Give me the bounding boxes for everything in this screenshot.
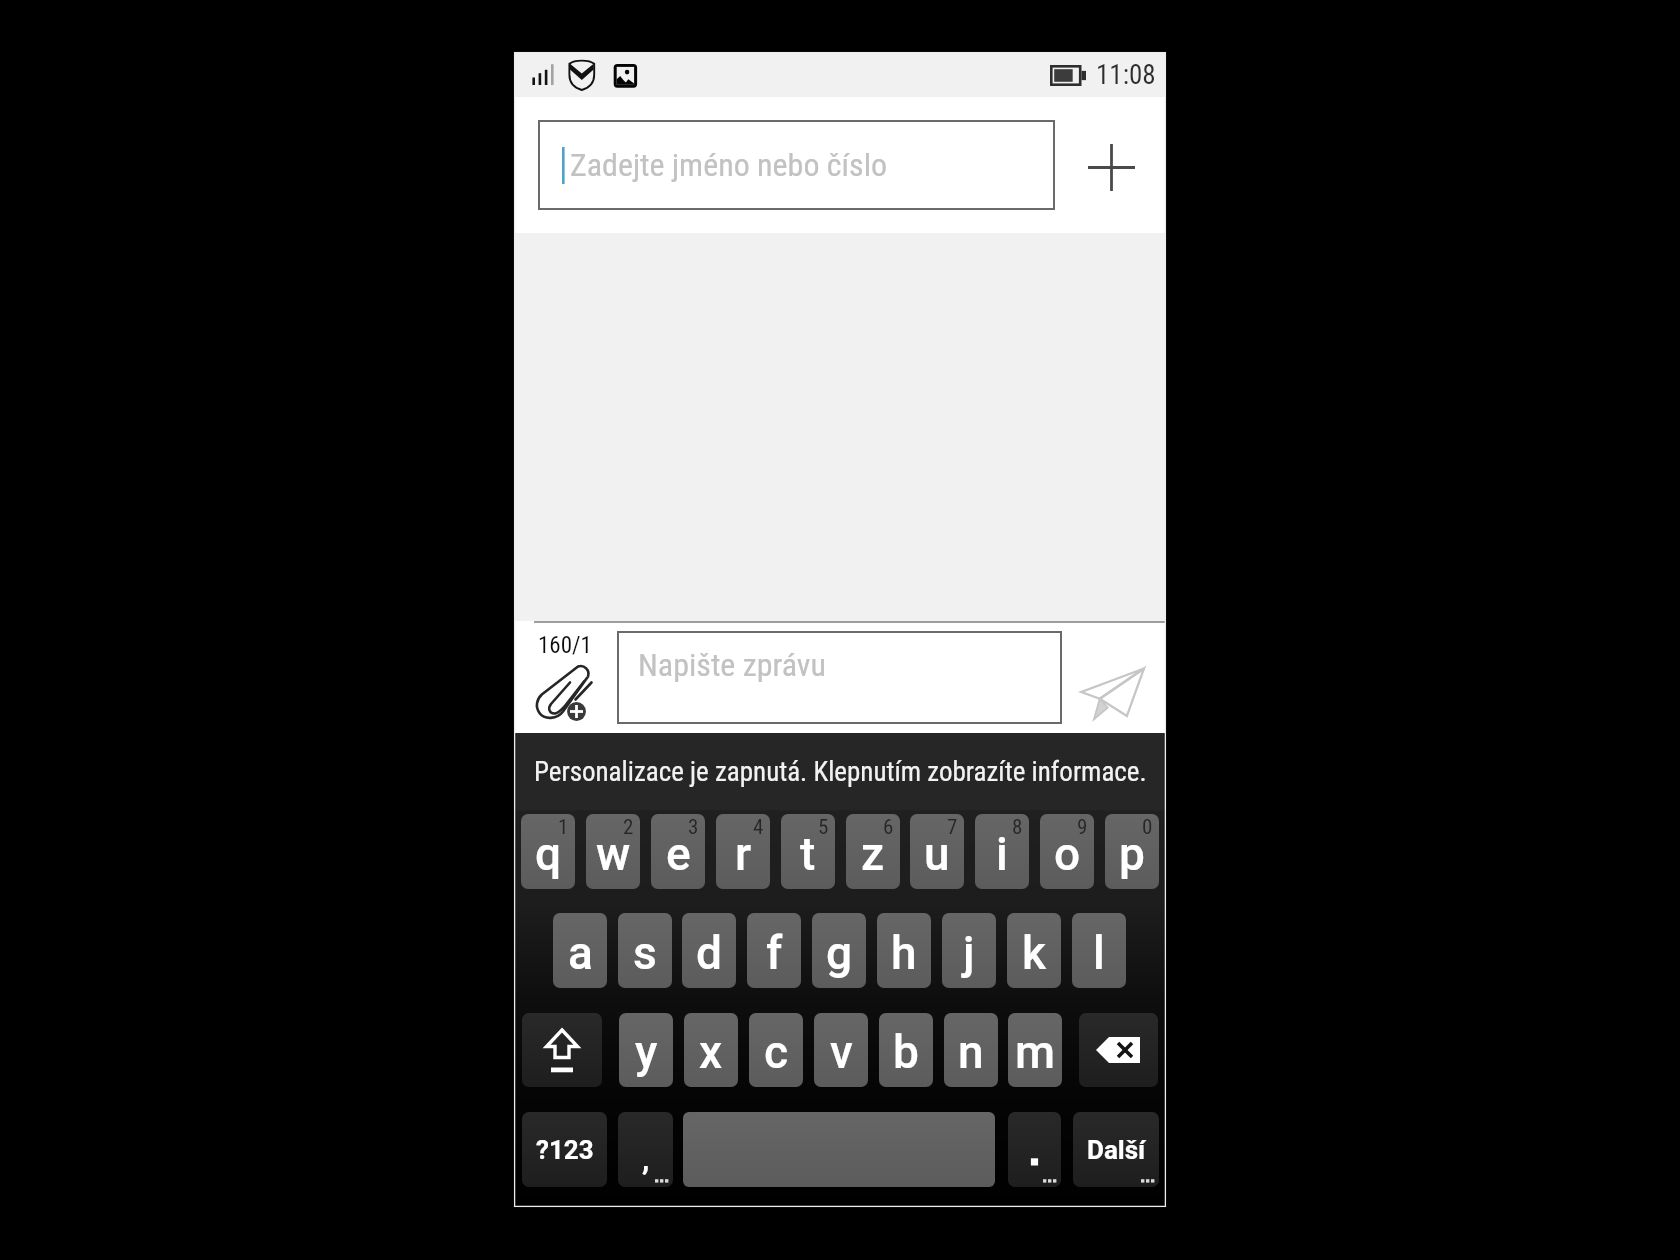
- staticText: 1: [558, 815, 569, 840]
- staticText: 7: [947, 815, 958, 840]
- staticText: 6: [883, 815, 894, 840]
- staticText: r: [735, 827, 752, 881]
- staticText: Personalizace je zapnutá. Klepnutím zobr…: [534, 756, 1147, 788]
- button[interactable]: 5: [781, 814, 835, 889]
- button[interactable]: f: [747, 913, 801, 988]
- staticText: d: [696, 926, 722, 980]
- button[interactable]: m: [1008, 1013, 1062, 1087]
- staticText: h: [891, 926, 917, 980]
- button[interactable]: Napište zprávu: [617, 631, 1062, 724]
- button[interactable]: 8: [975, 814, 1029, 889]
- button[interactable]: h: [877, 913, 931, 988]
- button[interactable]: 0: [1105, 814, 1159, 889]
- staticText: v: [830, 1025, 853, 1079]
- staticText: w: [596, 827, 631, 881]
- staticText: 4: [753, 815, 764, 840]
- button[interactable]: Personalizace je zapnutá. Klepnutím zobr…: [514, 733, 1166, 810]
- staticText: 9: [1077, 815, 1088, 840]
- staticText: 2: [623, 815, 634, 840]
- staticText: g: [826, 926, 853, 980]
- staticText: b: [893, 1025, 919, 1079]
- staticText: x: [699, 1025, 723, 1079]
- staticText: a: [568, 926, 593, 980]
- staticText: i: [996, 827, 1008, 881]
- staticText: p: [1119, 827, 1145, 881]
- staticText: 8: [1012, 815, 1023, 840]
- staticText: f: [766, 926, 783, 980]
- button[interactable]: x: [684, 1013, 738, 1087]
- button[interactable]: Attach: [534, 662, 596, 724]
- button[interactable]: 3: [651, 814, 705, 889]
- staticText: ?123: [536, 1135, 594, 1165]
- button[interactable]: Comma: [618, 1112, 673, 1187]
- button[interactable]: Send: [1080, 664, 1146, 720]
- button[interactable]: Period: [1008, 1112, 1061, 1187]
- staticText: Zadejte jméno nebo číslo: [570, 146, 888, 184]
- staticText: t: [800, 827, 816, 881]
- button[interactable]: 6: [846, 814, 900, 889]
- staticText: 5: [818, 815, 829, 840]
- staticText: Napište zprávu: [638, 646, 826, 684]
- staticText: c: [764, 1025, 789, 1079]
- staticText: y: [635, 1025, 658, 1079]
- button[interactable]: d: [682, 913, 736, 988]
- staticText: k: [1022, 926, 1047, 980]
- staticText: q: [535, 827, 562, 881]
- staticText: Další: [1087, 1135, 1146, 1165]
- staticText: 3: [688, 815, 699, 840]
- button[interactable]: Add recipient: [1079, 135, 1143, 199]
- staticText: z: [861, 827, 885, 881]
- button[interactable]: Space: [683, 1112, 995, 1187]
- button[interactable]: 2: [586, 814, 640, 889]
- staticText: u: [924, 827, 950, 881]
- staticText: o: [1054, 827, 1081, 881]
- staticText: ,: [642, 1142, 650, 1177]
- button[interactable]: 9: [1040, 814, 1094, 889]
- button[interactable]: 4: [716, 814, 770, 889]
- button[interactable]: ?123: [522, 1112, 607, 1187]
- button[interactable]: l: [1072, 913, 1126, 988]
- staticText: 160/1: [538, 632, 592, 659]
- button[interactable]: 1: [521, 814, 575, 889]
- staticText: 11:08: [1096, 59, 1156, 91]
- button[interactable]: s: [618, 913, 672, 988]
- staticText: s: [633, 926, 657, 980]
- staticText: j: [963, 926, 975, 980]
- staticText: n: [958, 1025, 984, 1079]
- staticText: m: [1015, 1025, 1056, 1079]
- button[interactable]: a: [553, 913, 607, 988]
- button[interactable]: Zadejte jméno nebo číslo: [538, 120, 1055, 210]
- button[interactable]: n: [944, 1013, 998, 1087]
- button[interactable]: k: [1007, 913, 1061, 988]
- staticText: e: [666, 827, 691, 881]
- button[interactable]: 7: [910, 814, 964, 889]
- button[interactable]: Backspace: [1079, 1013, 1158, 1087]
- button[interactable]: b: [879, 1013, 933, 1087]
- button[interactable]: v: [814, 1013, 868, 1087]
- staticText: l: [1093, 926, 1105, 980]
- staticText: 0: [1142, 815, 1153, 840]
- button[interactable]: g: [812, 913, 866, 988]
- button[interactable]: Další: [1073, 1112, 1159, 1187]
- button[interactable]: j: [942, 913, 996, 988]
- button[interactable]: c: [749, 1013, 803, 1087]
- button[interactable]: y: [619, 1013, 673, 1087]
- button[interactable]: Shift: [522, 1013, 602, 1087]
